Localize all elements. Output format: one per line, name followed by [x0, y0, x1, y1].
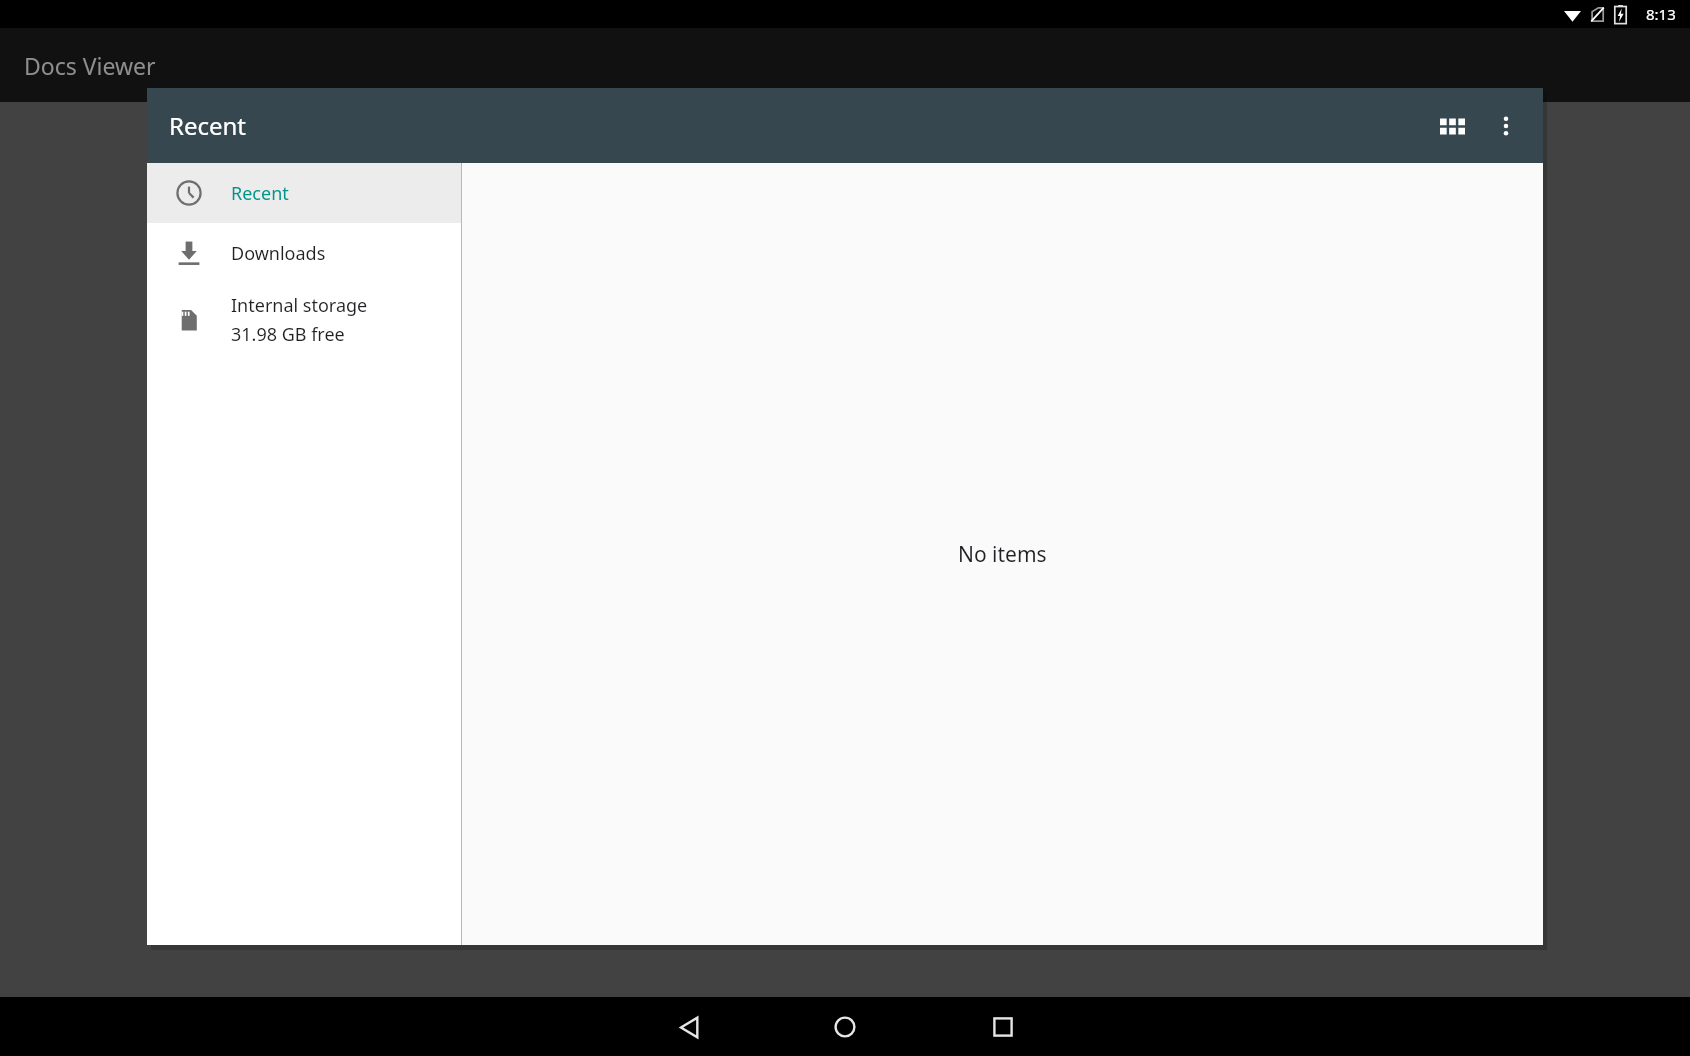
staticText: No items — [958, 540, 1047, 569]
staticText: Docs Viewer — [24, 50, 156, 81]
staticText: 31.98 GB free — [231, 322, 345, 347]
button[interactable]: More options — [1479, 99, 1533, 153]
button[interactable]: Recent — [147, 163, 461, 223]
staticText: Recent — [169, 109, 247, 142]
button[interactable]: Grid view — [1425, 99, 1479, 153]
staticText: Internal storage — [231, 293, 368, 318]
button[interactable]: Downloads — [147, 223, 461, 283]
staticText: Recent — [231, 181, 289, 206]
staticText: Downloads — [231, 241, 326, 266]
button[interactable]: Recents — [974, 998, 1032, 1056]
button[interactable]: Home — [816, 998, 874, 1056]
button[interactable]: Internal storage — [147, 283, 461, 357]
button[interactable]: Back — [660, 998, 718, 1056]
staticText: 8:13 — [1646, 4, 1676, 24]
